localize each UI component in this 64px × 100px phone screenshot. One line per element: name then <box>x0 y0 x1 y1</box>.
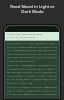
staticText: Read Novel in Light or Dark Mode <box>10 3 55 14</box>
